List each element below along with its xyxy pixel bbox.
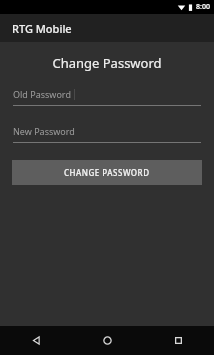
staticText: RTG Mobile — [12, 21, 72, 36]
staticText: Change Password — [0, 54, 214, 72]
button[interactable]: Recent apps — [143, 326, 214, 355]
staticText: 8:00 — [196, 2, 210, 12]
staticText: Old Password — [13, 88, 71, 100]
button[interactable]: CHANGE PASSWORD — [12, 160, 202, 185]
button[interactable]: Home — [72, 326, 143, 355]
button[interactable]: Back — [0, 326, 72, 355]
staticText: CHANGE PASSWORD — [64, 167, 150, 178]
staticText: New Password — [13, 125, 75, 137]
